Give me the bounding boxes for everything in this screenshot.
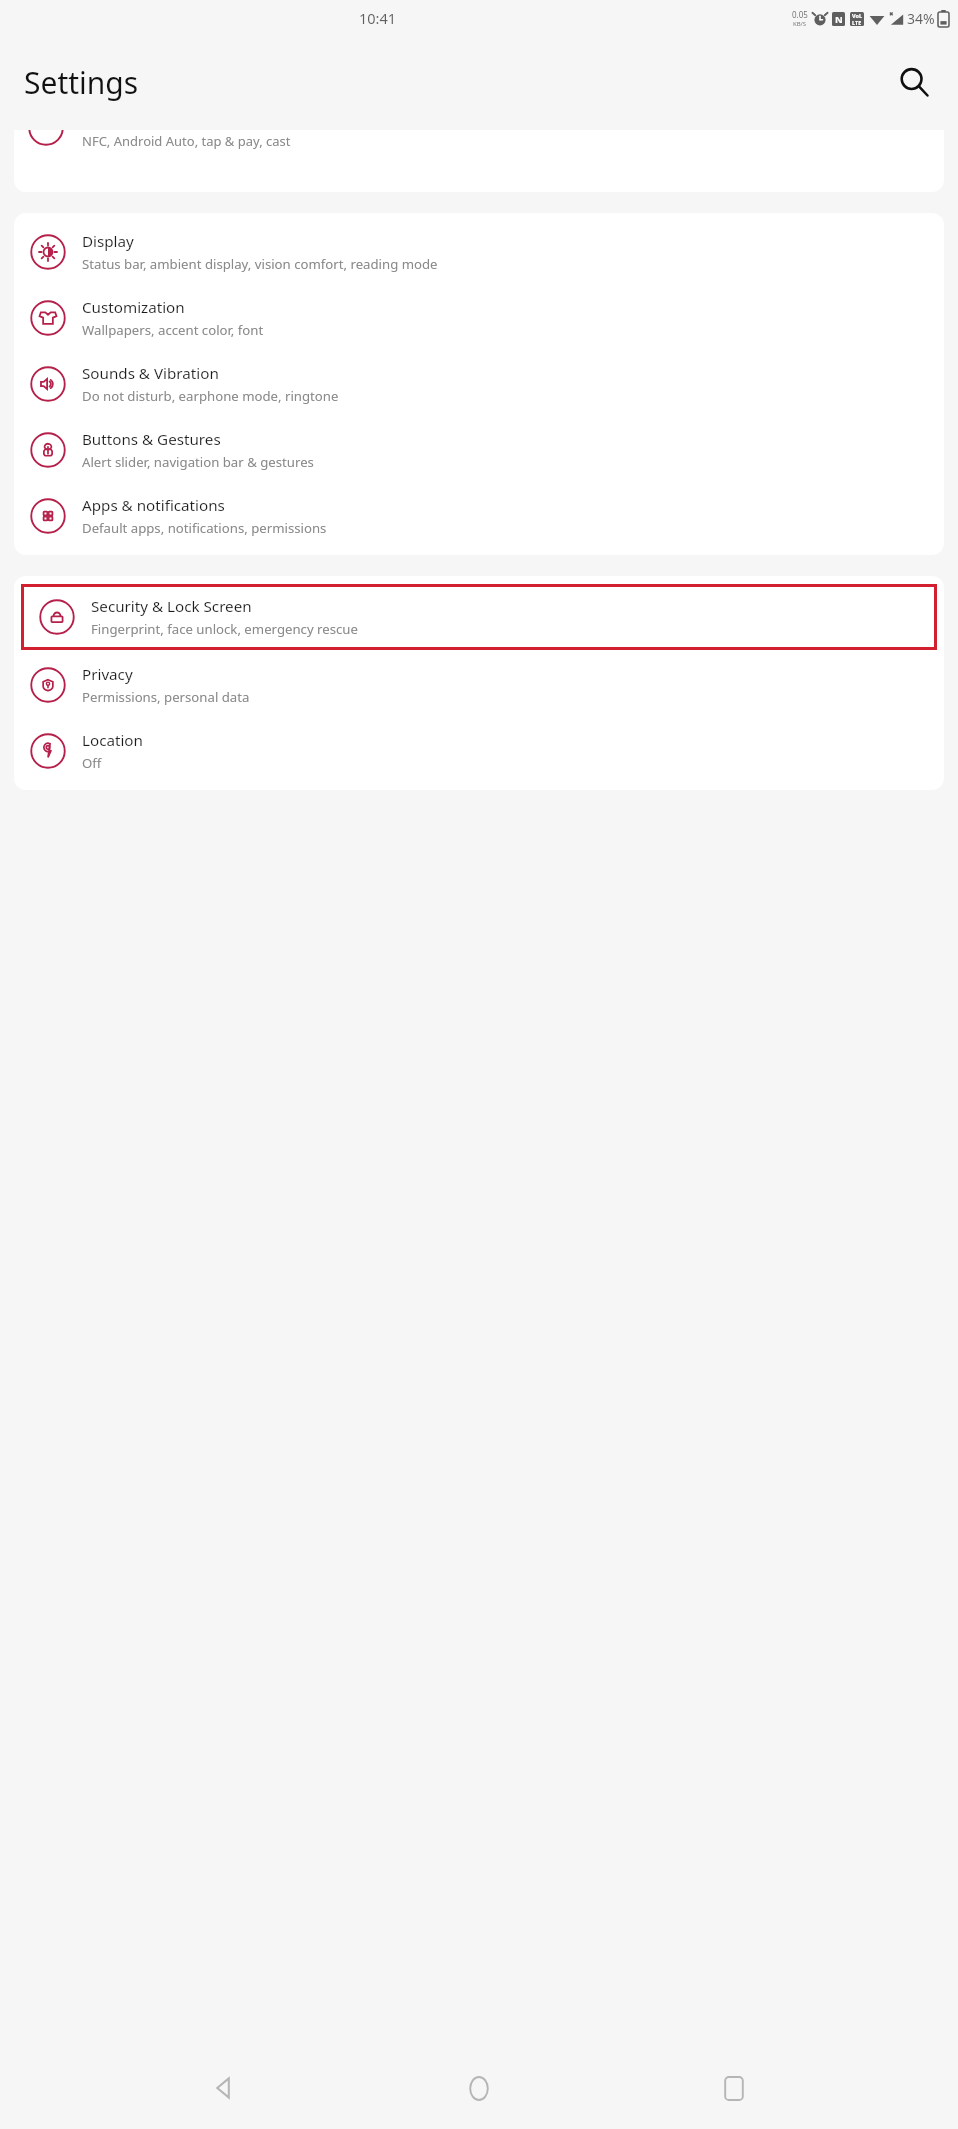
staticText: Alert slider, navigation bar & gestures bbox=[82, 453, 314, 471]
staticText: Settings bbox=[24, 62, 139, 103]
button[interactable]: Apps & notifications bbox=[14, 483, 944, 549]
button[interactable]: Sounds & Vibration bbox=[14, 351, 944, 417]
staticText: Customization bbox=[82, 297, 185, 318]
staticText: VoL bbox=[852, 12, 862, 19]
staticText: Apps & notifications bbox=[82, 495, 225, 516]
button[interactable]: Search bbox=[888, 56, 940, 108]
staticText: Status bar, ambient display, vision comf… bbox=[82, 255, 438, 273]
staticText: Location bbox=[82, 730, 143, 751]
button[interactable]: Back bbox=[193, 2057, 255, 2119]
button[interactable]: Security & Lock Screen bbox=[21, 584, 937, 650]
button[interactable]: Home bbox=[448, 2057, 510, 2119]
staticText: Default apps, notifications, permissions bbox=[82, 519, 327, 537]
staticText: Display bbox=[82, 231, 134, 252]
staticText: Buttons & Gestures bbox=[82, 429, 221, 450]
button[interactable]: Buttons & Gestures bbox=[14, 417, 944, 483]
staticText: Privacy bbox=[82, 664, 133, 685]
staticText: LTE bbox=[852, 19, 862, 26]
staticText: Sounds & Vibration bbox=[82, 363, 219, 384]
staticText: Do not disturb, earphone mode, ringtone bbox=[82, 387, 339, 405]
button[interactable]: Display bbox=[14, 219, 944, 285]
button[interactable]: Location bbox=[14, 718, 944, 784]
button[interactable]: NFC, Android Auto, tap & pay, cast bbox=[14, 130, 944, 192]
button[interactable]: Privacy bbox=[14, 652, 944, 718]
button[interactable]: Recent apps bbox=[703, 2057, 765, 2119]
staticText: KB/S bbox=[793, 20, 807, 28]
staticText: Off bbox=[82, 754, 102, 772]
staticText: NFC, Android Auto, tap & pay, cast bbox=[82, 132, 291, 150]
staticText: 0.05 bbox=[792, 9, 808, 20]
button[interactable]: Customization bbox=[14, 285, 944, 351]
staticText: Security & Lock Screen bbox=[91, 596, 252, 617]
staticText: N bbox=[835, 13, 843, 26]
staticText: Permissions, personal data bbox=[82, 688, 250, 706]
staticText: Wallpapers, accent color, font bbox=[82, 321, 264, 339]
staticText: Fingerprint, face unlock, emergency resc… bbox=[91, 620, 358, 638]
staticText: 10:41 bbox=[359, 8, 397, 28]
staticText: 34% bbox=[907, 9, 935, 28]
